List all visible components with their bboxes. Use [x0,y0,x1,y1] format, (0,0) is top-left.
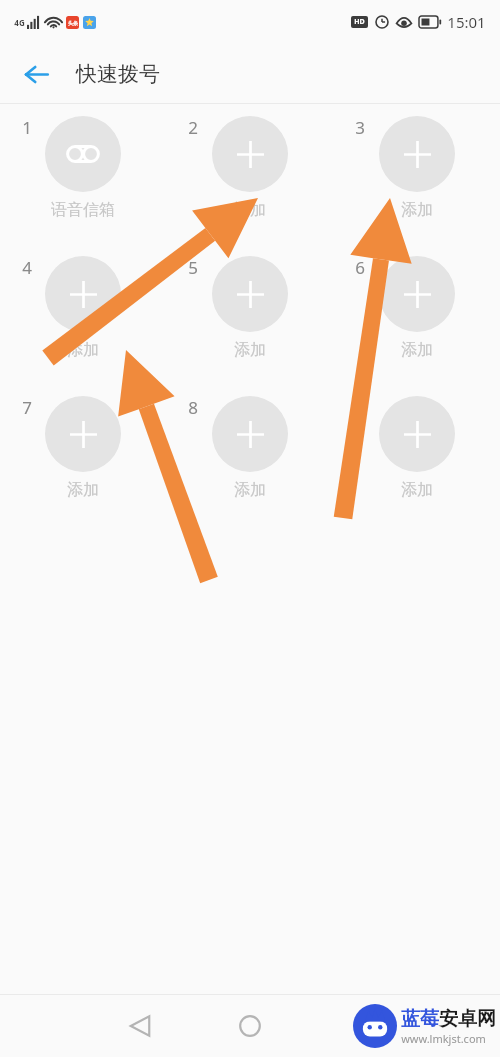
staticText: 快速拨号 [76,61,160,87]
staticText: 语音信箱 [51,200,115,220]
staticText: 4 [22,256,32,279]
button[interactable]: 7 [0,394,166,519]
button[interactable]: 4 [0,254,166,379]
staticText: 4G [14,17,25,28]
button[interactable]: 8 [166,394,333,519]
staticText: 7 [22,396,32,419]
staticText: 添加 [234,340,266,360]
button[interactable]: 3 [333,114,500,239]
staticText: 6 [355,256,365,279]
staticText: www.lmkjst.com [401,1031,486,1046]
button[interactable]: 9 [333,394,500,519]
staticText: 添加 [67,480,99,500]
button[interactable]: Back [112,998,168,1054]
staticText: 添加 [234,200,266,220]
staticText: 添加 [401,200,433,220]
staticText: HD [354,17,365,27]
staticText: 1 [22,116,32,139]
staticText: 头条 [68,20,78,26]
staticText: 安卓网 [439,1007,496,1031]
staticText: 添加 [234,480,266,500]
staticText: 3 [355,116,365,139]
staticText: 15:01 [447,12,486,32]
button[interactable]: 5 [166,254,333,379]
button[interactable]: Home [222,998,278,1054]
staticText: 添加 [401,340,433,360]
staticText: 添加 [67,340,99,360]
staticText: 2 [188,116,198,139]
staticText: 8 [188,396,198,419]
staticText: 蓝莓 [401,1007,439,1031]
staticText: 5 [188,256,198,279]
button[interactable]: 1 [0,114,166,239]
staticText: 添加 [401,480,433,500]
button[interactable]: 2 [166,114,333,239]
button[interactable]: 6 [333,254,500,379]
button[interactable]: Back [10,48,62,100]
